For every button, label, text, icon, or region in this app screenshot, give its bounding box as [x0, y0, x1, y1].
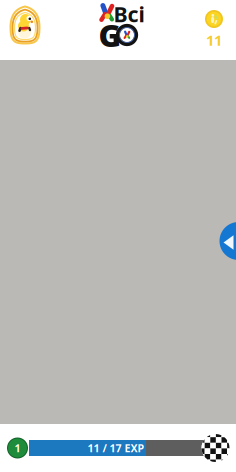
- button[interactable]: Open panel: [219, 222, 236, 260]
- staticText: 11: [206, 30, 222, 50]
- staticText: G: [98, 15, 121, 55]
- button[interactable]: Points: 11: [194, 8, 234, 52]
- staticText: 1: [14, 441, 20, 455]
- staticText: Bci: [113, 0, 144, 28]
- staticText: 11 / 17 EXP: [87, 441, 144, 455]
- button[interactable]: Profile: [2, 0, 48, 51]
